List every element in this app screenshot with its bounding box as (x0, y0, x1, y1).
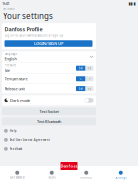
button[interactable]: Feedback (2, 144, 96, 153)
staticText: Get Started (10, 176, 25, 179)
staticText: SETTINGS (3, 7, 14, 10)
button[interactable]: Test Bluetooth (2, 117, 96, 125)
button[interactable]: Release unit (2, 84, 96, 93)
button[interactable]: Pressure (2, 63, 96, 74)
staticText: bar (79, 66, 83, 70)
staticText: Help (10, 129, 17, 133)
staticText: Language (4, 52, 17, 56)
button[interactable]: Connect (69, 166, 103, 184)
staticText: Your settings (3, 10, 53, 21)
staticText: Log on to your Danfoss account or sign u… (4, 34, 63, 37)
button[interactable]: Test Socket (2, 107, 96, 115)
staticText: Danfoss Profile (4, 26, 42, 33)
staticText: psi (87, 87, 91, 90)
staticText: Dark mode (10, 98, 30, 103)
staticText: Test Socket (39, 109, 58, 114)
button[interactable]: Temperature (2, 74, 96, 83)
staticText: LOGIN/SIGN UP (34, 41, 63, 46)
staticText: End User License Agreement (10, 138, 50, 142)
staticText: °C (79, 77, 82, 80)
button[interactable]: End User License Agreement (2, 135, 96, 144)
staticText: bar (4, 67, 10, 73)
button[interactable]: Settings (103, 166, 138, 184)
staticText: Temperature (4, 76, 27, 81)
button[interactable]: Get Started (0, 166, 34, 184)
button[interactable]: Tools (34, 166, 69, 184)
staticText: °F (88, 77, 90, 80)
staticText: psi (87, 66, 91, 70)
staticText: Settings (115, 176, 126, 179)
staticText: Tools (48, 176, 55, 179)
staticText: Test Bluetooth (37, 119, 61, 124)
staticText: ▮▮ ▮ (128, 1, 135, 6)
staticText: Release unit (4, 86, 24, 91)
staticText: bar (79, 87, 83, 90)
staticText: Danfoss (60, 163, 77, 169)
staticText: English (4, 56, 16, 61)
button[interactable]: LOGIN/SIGN UP (4, 40, 92, 47)
staticText: Pressure (4, 63, 16, 67)
staticText: 9:41 (2, 1, 9, 6)
button[interactable]: Dark mode (2, 95, 96, 105)
staticText: Feedback (10, 147, 22, 151)
button[interactable]: Language (2, 51, 96, 62)
button[interactable]: Help (2, 126, 96, 135)
staticText: Connect (80, 176, 92, 179)
